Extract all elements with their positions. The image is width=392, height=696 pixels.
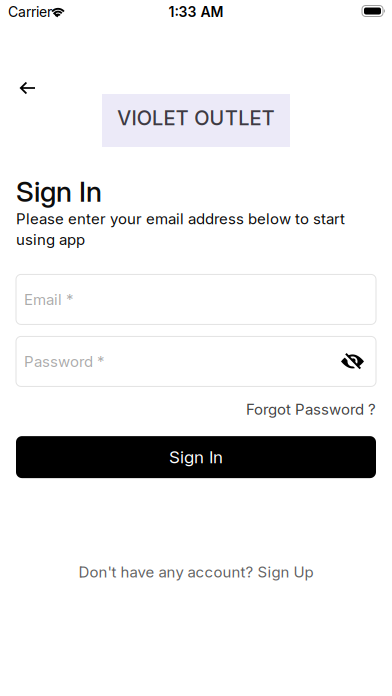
button[interactable]: Show password <box>341 354 364 368</box>
staticText: Password * <box>24 353 104 370</box>
button[interactable]: Don't have any account? Sign Up <box>78 563 313 581</box>
staticText: Sign In <box>169 447 223 467</box>
staticText: Carrier <box>8 4 52 20</box>
staticText: Sign In <box>16 175 102 208</box>
button[interactable]: Forgot Password ? <box>246 400 376 418</box>
staticText: Forgot Password ? <box>246 400 376 418</box>
button[interactable]: Back <box>14 74 43 94</box>
button[interactable]: Sign In <box>16 436 376 478</box>
staticText: 1:33 AM <box>168 4 223 20</box>
staticText: Don't have any account? Sign Up <box>78 563 313 581</box>
staticText: Email * <box>24 291 73 308</box>
staticText: Please enter your email address below to… <box>16 210 345 248</box>
staticText: VIOLET OUTLET <box>117 106 275 130</box>
